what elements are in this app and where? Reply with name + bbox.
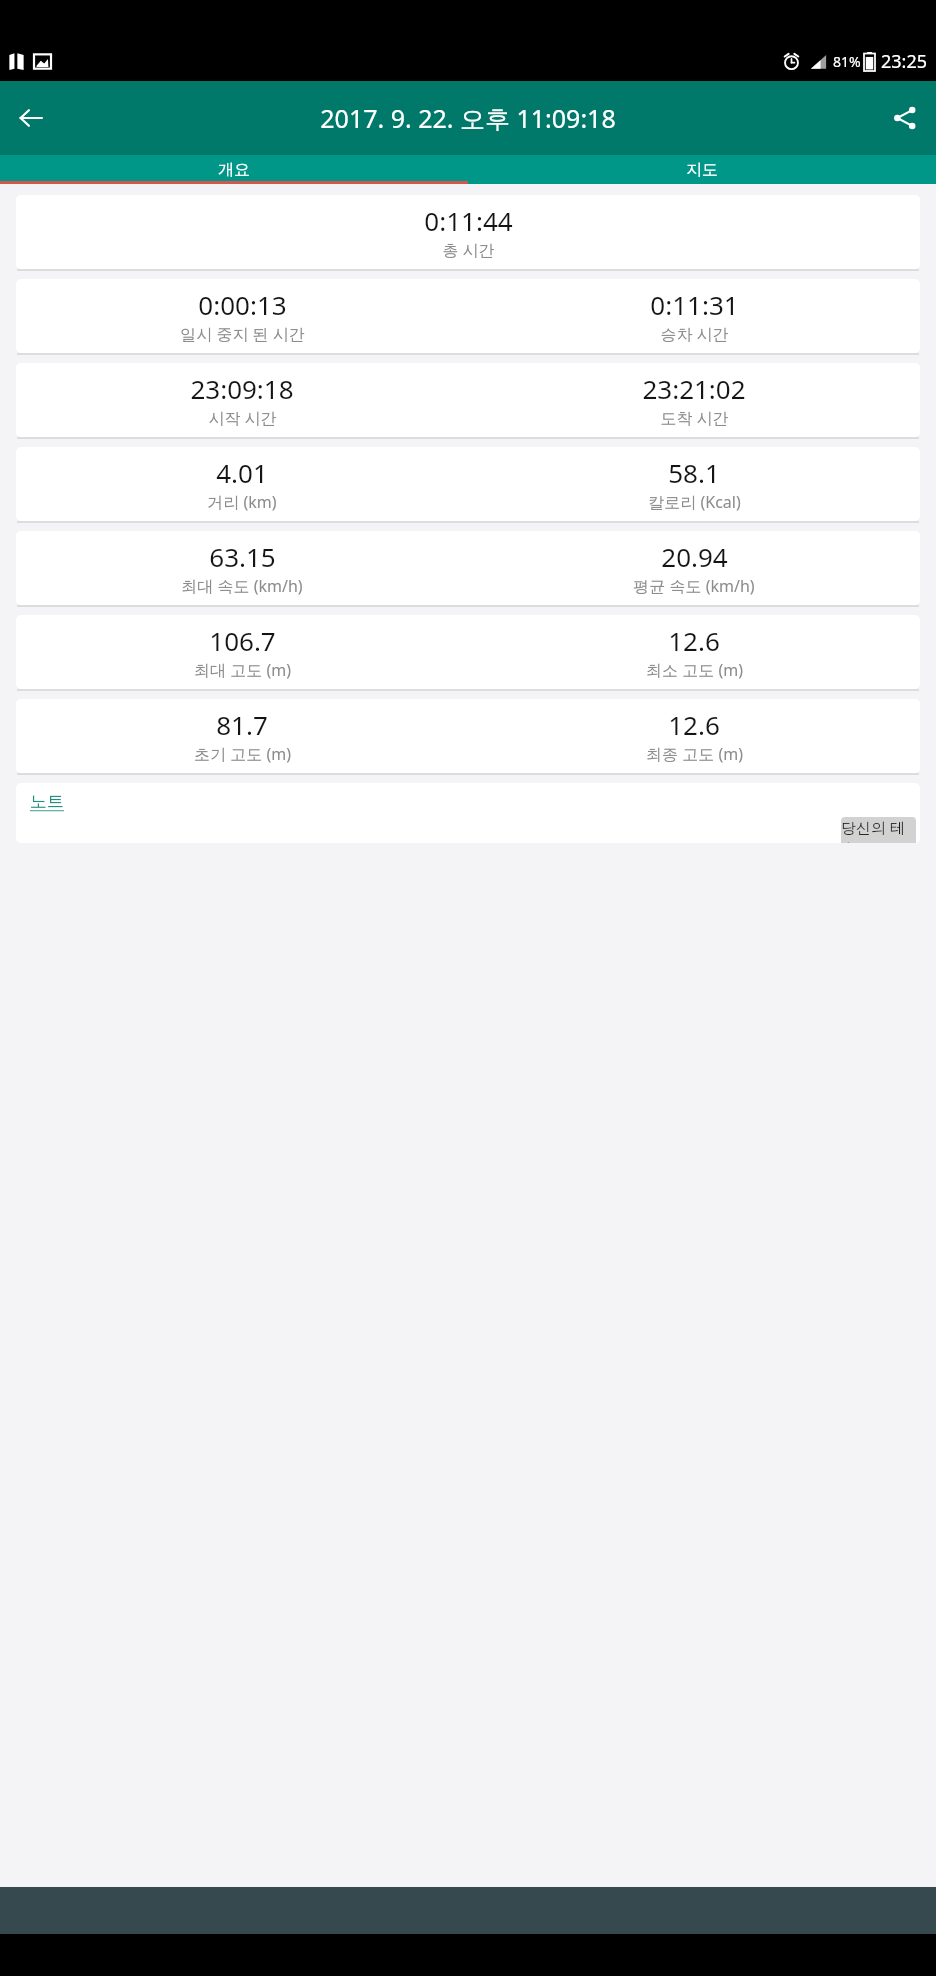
staticText: 20.94 xyxy=(661,539,728,574)
staticText: 당신의 테스트 xyxy=(841,817,916,843)
staticText: 노트 xyxy=(30,791,64,812)
staticText: 23:25 xyxy=(881,49,928,74)
button[interactable]: 23:09:18 xyxy=(16,363,920,437)
staticText: 최대 고도 (m) xyxy=(194,659,291,681)
staticText: 0:11:31 xyxy=(650,287,739,322)
staticText: 63.15 xyxy=(209,539,276,574)
staticText: 81% xyxy=(833,52,861,71)
staticText: 최소 고도 (m) xyxy=(646,659,743,681)
staticText: 58.1 xyxy=(668,455,720,490)
button[interactable]: Share xyxy=(880,93,930,143)
staticText: 최종 고도 (m) xyxy=(646,743,743,765)
staticText: 106.7 xyxy=(209,623,276,658)
staticText: 81.7 xyxy=(216,707,268,742)
button[interactable]: 0:00:13 xyxy=(16,279,920,353)
staticText: 2017. 9. 22. 오후 11:09:18 xyxy=(320,101,616,135)
staticText: 지도 xyxy=(686,160,718,180)
staticText: 일시 중지 된 시간 xyxy=(180,323,305,345)
button[interactable]: 지도 xyxy=(468,155,936,184)
staticText: 4.01 xyxy=(216,455,268,490)
button[interactable]: 81.7 xyxy=(16,699,920,773)
button[interactable]: 당신의 테스트 xyxy=(841,817,916,843)
staticText: 시작 시간 xyxy=(208,407,277,429)
button[interactable]: 노트 xyxy=(16,783,920,843)
staticText: 0:11:44 xyxy=(424,203,513,238)
staticText: 0:00:13 xyxy=(198,287,287,322)
button[interactable]: 개요 xyxy=(0,155,468,184)
staticText: 거리 (km) xyxy=(207,491,277,513)
staticText: 도착 시간 xyxy=(660,407,729,429)
staticText: 12.6 xyxy=(668,707,720,742)
staticText: 초기 고도 (m) xyxy=(194,743,291,765)
staticText: 승차 시간 xyxy=(660,323,729,345)
button[interactable]: 4.01 xyxy=(16,447,920,521)
staticText: 총 시간 xyxy=(442,239,495,261)
button[interactable]: 106.7 xyxy=(16,615,920,689)
staticText: 23:21:02 xyxy=(642,371,746,406)
staticText: 최대 속도 (km/h) xyxy=(181,575,303,597)
staticText: 평균 속도 (km/h) xyxy=(633,575,755,597)
button[interactable]: Back xyxy=(6,93,56,143)
staticText: 칼로리 (Kcal) xyxy=(648,491,741,513)
button[interactable]: 0:11:44 xyxy=(16,195,920,269)
button[interactable]: 63.15 xyxy=(16,531,920,605)
staticText: 23:09:18 xyxy=(190,371,294,406)
staticText: 개요 xyxy=(218,160,250,180)
staticText: 12.6 xyxy=(668,623,720,658)
